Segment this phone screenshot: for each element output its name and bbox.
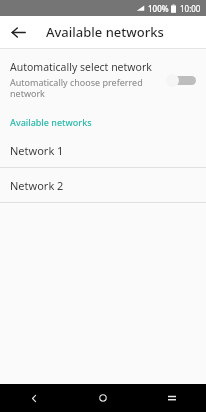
staticText: Network 2 — [10, 178, 64, 193]
staticText: Automatically choose preferred network — [10, 76, 158, 100]
staticText: Network 1 — [10, 143, 64, 158]
staticText: Automatically select network — [10, 60, 152, 74]
button[interactable]: Recent apps — [137, 384, 206, 412]
staticText: Available networks — [46, 23, 164, 41]
button[interactable]: Back — [0, 384, 68, 412]
button[interactable]: Automatically select network toggle — [164, 69, 198, 91]
staticText: 10:00 — [180, 3, 201, 14]
staticText: Available networks — [10, 116, 92, 128]
button[interactable]: Back — [4, 18, 32, 46]
button[interactable]: Automatically select network — [0, 49, 206, 111]
button[interactable]: Home — [68, 384, 137, 412]
staticText: 100% — [148, 3, 169, 14]
button[interactable]: Network 1 — [0, 133, 206, 167]
button[interactable]: Network 2 — [0, 168, 206, 202]
